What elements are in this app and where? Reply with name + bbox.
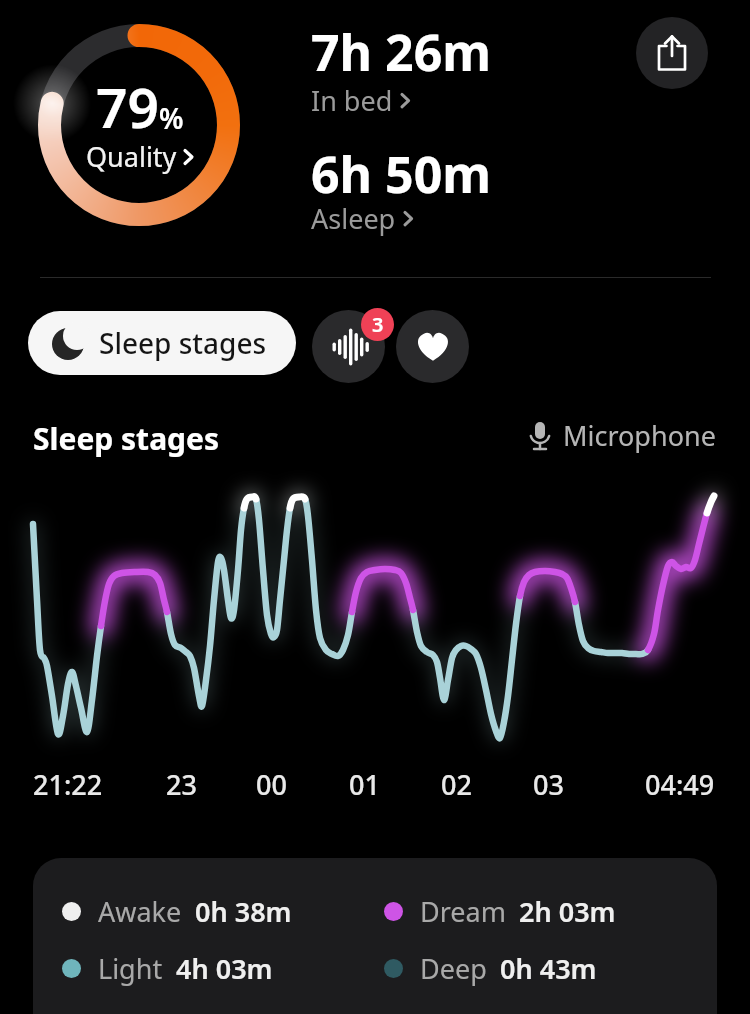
staticText: Light xyxy=(98,950,163,987)
staticText: 0h 43m xyxy=(500,950,597,987)
button[interactable]: 79 xyxy=(29,15,249,235)
staticText: 79 xyxy=(96,69,159,144)
button[interactable]: Light xyxy=(62,949,273,987)
staticText: 0h 38m xyxy=(195,893,292,930)
staticText: 2h 03m xyxy=(519,893,616,930)
staticText: 7h 26m xyxy=(311,18,492,86)
staticText: In bed xyxy=(311,82,393,119)
staticText: Dream xyxy=(420,893,506,930)
staticText: Sleep stages xyxy=(99,324,267,362)
staticText: 00 xyxy=(256,766,287,803)
button[interactable]: Awake xyxy=(62,892,292,930)
staticText: Quality xyxy=(86,138,177,175)
button[interactable] xyxy=(396,310,469,383)
button[interactable] xyxy=(312,310,385,383)
button[interactable]: Deep xyxy=(384,949,597,987)
staticText: Asleep xyxy=(311,200,396,237)
staticText: 03 xyxy=(533,766,564,803)
staticText: Sleep stages xyxy=(33,418,220,459)
staticText: 6h 50m xyxy=(311,140,492,208)
staticText: 01 xyxy=(349,766,380,803)
staticText: 3 xyxy=(372,311,384,338)
button[interactable]: Sleep stages xyxy=(28,311,296,375)
button[interactable]: Dream xyxy=(384,892,616,930)
button[interactable]: In bed xyxy=(311,82,410,119)
staticText: Microphone xyxy=(563,417,716,454)
staticText: % xyxy=(159,99,184,137)
staticText: 04:49 xyxy=(645,766,715,803)
button[interactable]: Microphone xyxy=(527,417,716,454)
staticText: 23 xyxy=(166,766,197,803)
button[interactable] xyxy=(636,17,708,89)
staticText: 21:22 xyxy=(33,766,103,803)
button[interactable]: Asleep xyxy=(311,200,413,237)
staticText: 02 xyxy=(441,766,472,803)
staticText: 4h 03m xyxy=(176,950,273,987)
staticText: Deep xyxy=(420,950,487,987)
staticText: Awake xyxy=(98,893,182,930)
